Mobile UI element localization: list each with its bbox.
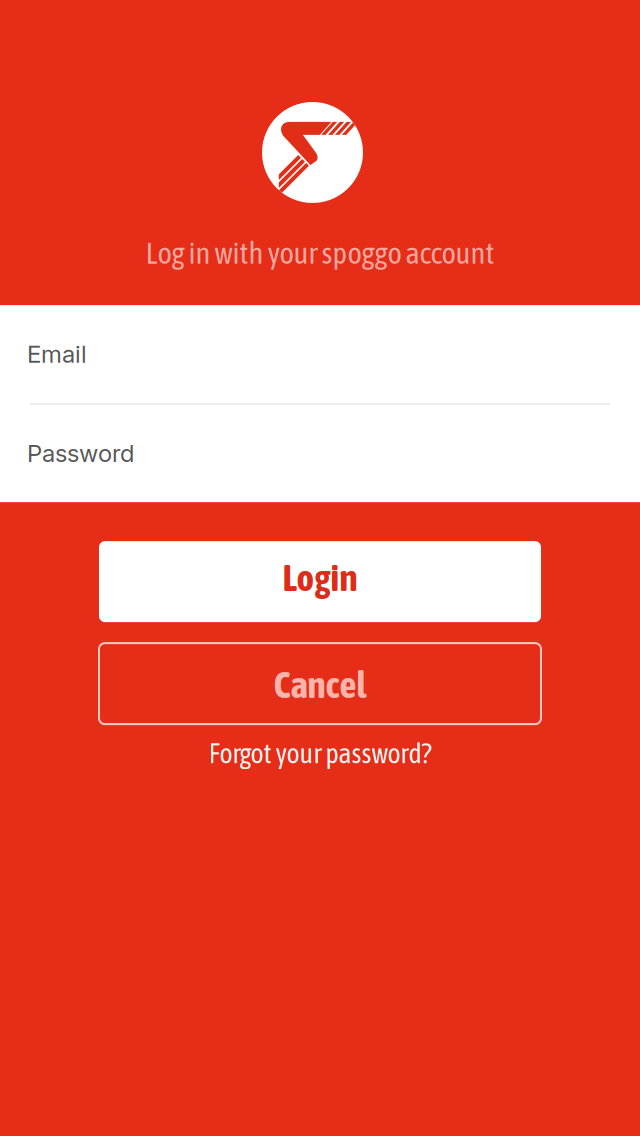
staticText: Forgot your password? (208, 737, 431, 769)
button[interactable]: Cancel (99, 643, 541, 724)
staticText: Email (27, 340, 87, 369)
button[interactable]: Forgot your password? (208, 736, 431, 770)
button[interactable]: Login (99, 541, 541, 622)
staticText: Login (282, 556, 357, 599)
staticText: Log in with your spoggo account (145, 235, 494, 270)
staticText: Cancel (273, 663, 366, 706)
staticText: Password (27, 439, 134, 468)
